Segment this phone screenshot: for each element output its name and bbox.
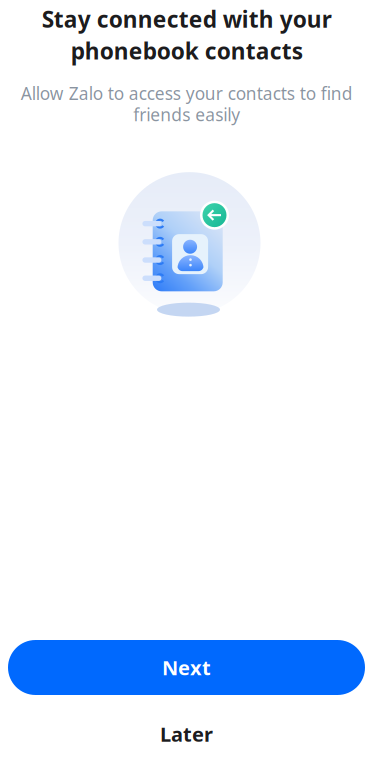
staticText: Next [162,654,211,681]
staticText: Later [160,721,213,747]
staticText: Allow Zalo to access your contacts to fi… [20,82,352,126]
button[interactable]: Next [8,640,365,695]
button[interactable]: Later [0,712,373,756]
staticText: Stay connected with your phonebook conta… [41,4,331,66]
